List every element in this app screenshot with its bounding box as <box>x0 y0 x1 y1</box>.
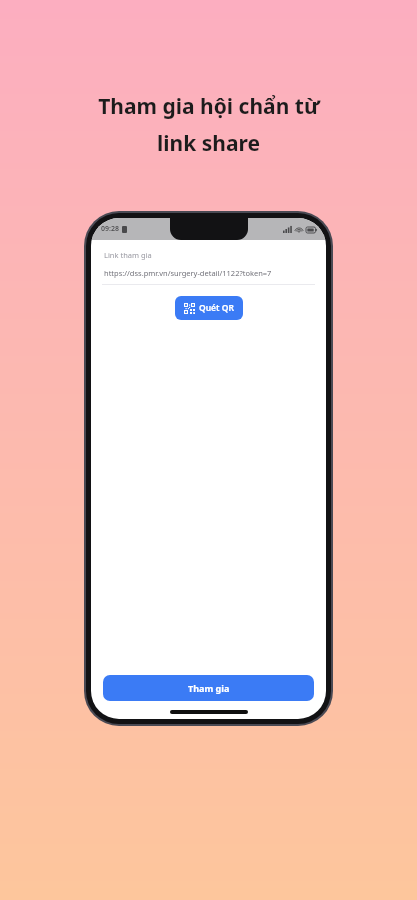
button[interactable]: Tham gia <box>103 675 314 701</box>
staticText: 09:28 <box>101 224 119 234</box>
staticText: https://dss.pmr.vn/surgery-detail/1122?t… <box>104 268 272 278</box>
button[interactable]: Quét QR <box>175 296 243 320</box>
staticText: Tham gia hội chẩn từ <box>98 92 320 121</box>
staticText: Quét QR <box>199 302 234 314</box>
other: Quét QR <box>184 303 195 314</box>
staticText: Tham gia <box>188 682 230 694</box>
staticText: Link tham gia <box>104 250 152 260</box>
staticText: link share <box>157 129 260 158</box>
